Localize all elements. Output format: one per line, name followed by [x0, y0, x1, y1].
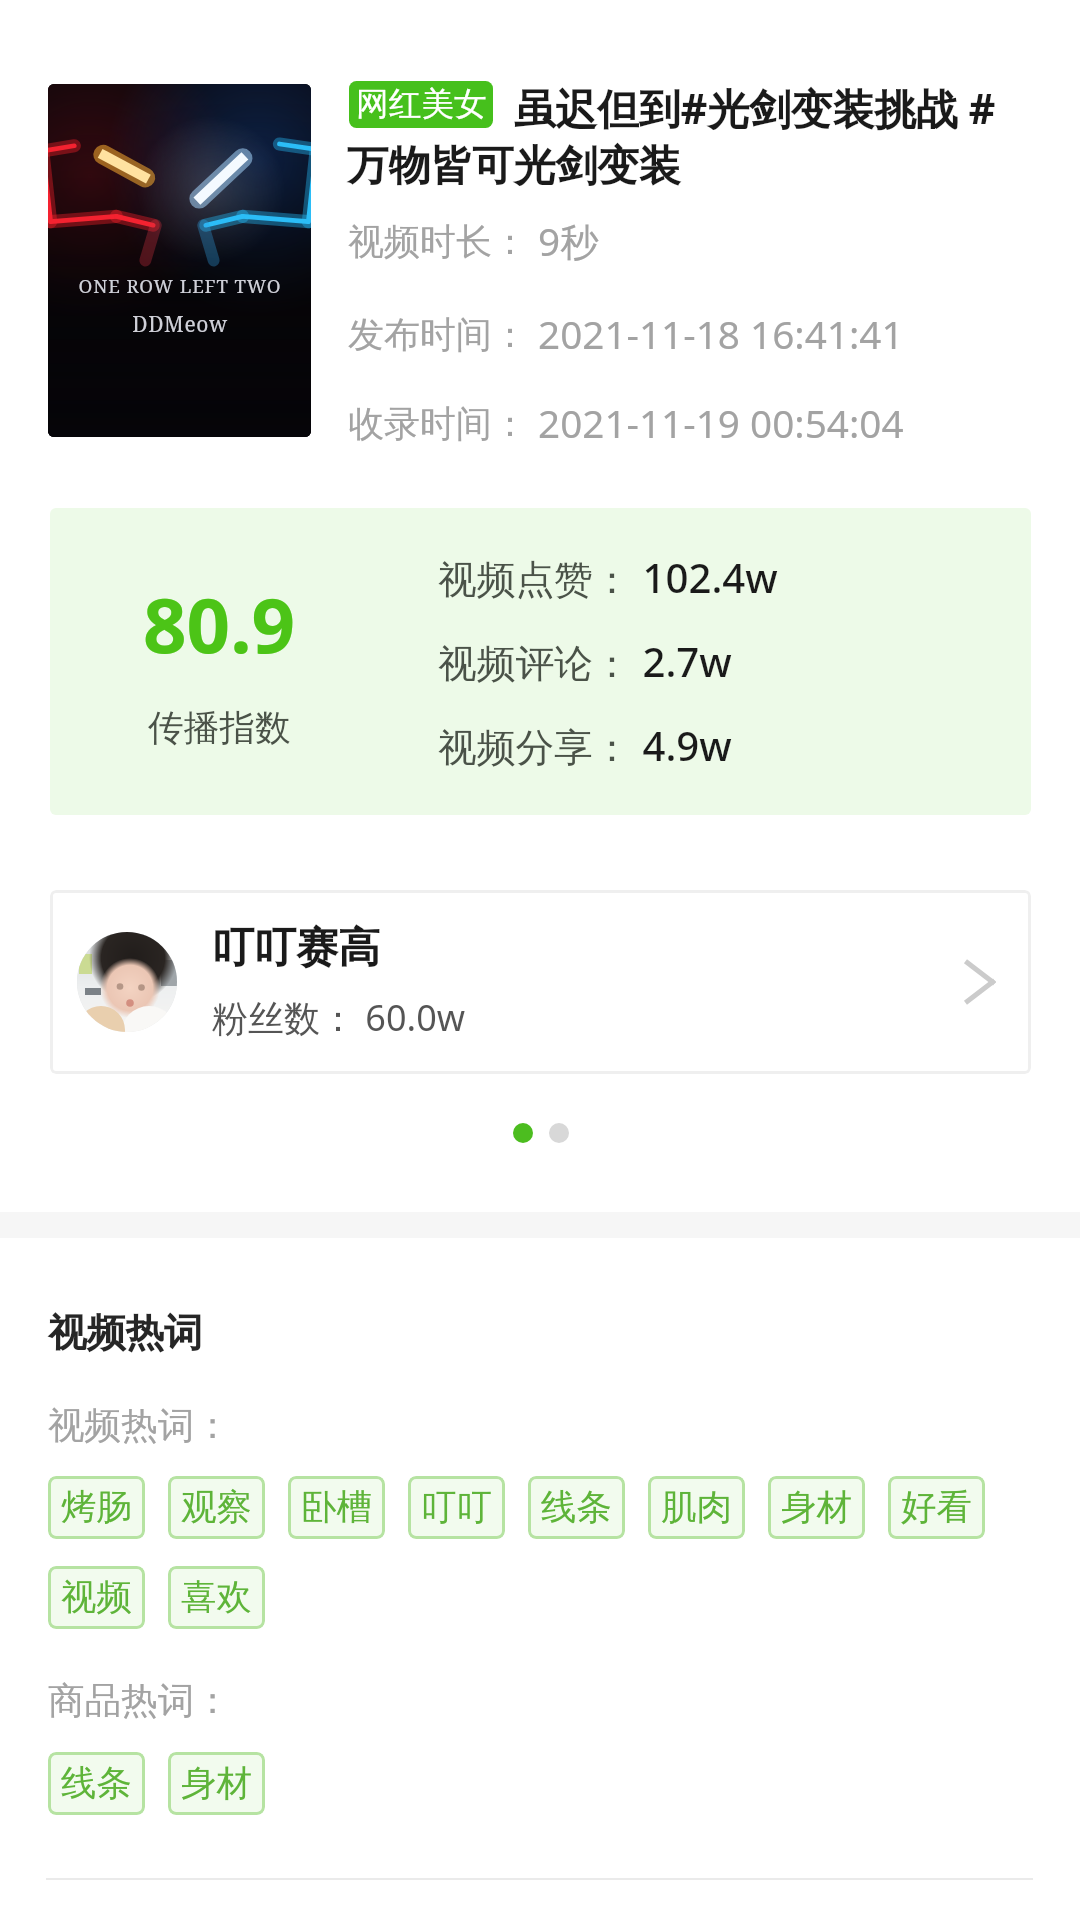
button[interactable]: 卧槽: [288, 1476, 385, 1539]
staticText: 烤肠: [61, 1485, 132, 1530]
staticText: 2.7w: [632, 634, 732, 689]
button[interactable]: 烤肠: [48, 1476, 145, 1539]
staticText: 4.9w: [632, 718, 732, 773]
staticText: 卧槽: [301, 1485, 372, 1530]
staticText: 商品热词：: [48, 1678, 231, 1724]
staticText: 肌肉: [661, 1485, 732, 1530]
staticText: 视频评论：: [438, 640, 632, 689]
button[interactable]: 线条: [48, 1752, 145, 1815]
staticText: 叮叮赛高: [212, 922, 380, 975]
button[interactable]: 观察: [168, 1476, 265, 1539]
button[interactable]: 好看: [888, 1476, 985, 1539]
button[interactable]: 视频: [48, 1566, 145, 1629]
button[interactable]: 第 1 页: [513, 1123, 533, 1143]
staticText: 叮叮: [421, 1485, 492, 1530]
button[interactable]: 叮叮赛高: [50, 890, 1031, 1074]
staticText: 观察: [181, 1485, 252, 1530]
button[interactable]: 网红美女: [349, 81, 493, 128]
staticText: 粉丝数： 60.0w: [212, 993, 466, 1042]
staticText: 传播指数: [148, 706, 291, 751]
staticText: 80.9: [143, 572, 296, 676]
staticText: 线条: [541, 1485, 612, 1530]
staticText: 线条: [61, 1761, 132, 1806]
staticText: 好看: [901, 1485, 972, 1530]
staticText: 9秒: [538, 215, 599, 268]
staticText: 2021-11-19 00:54:04: [538, 397, 904, 450]
staticText: 视频点赞：: [438, 556, 632, 605]
staticText: 2021-11-18 16:41:41: [538, 308, 904, 361]
staticText: 视频: [61, 1575, 132, 1620]
staticText: ONE ROW LEFT TWO: [78, 273, 282, 298]
button[interactable]: 视频封面: [48, 84, 311, 437]
button[interactable]: 身材: [168, 1752, 265, 1815]
button[interactable]: 喜欢: [168, 1566, 265, 1629]
button[interactable]: 查看作者详情: [947, 949, 1013, 1015]
button[interactable]: 80.9: [50, 508, 1031, 815]
staticText: 喜欢: [181, 1575, 252, 1620]
button[interactable]: 第 2 页: [549, 1123, 569, 1143]
staticText: 视频热词: [48, 1309, 203, 1358]
staticText: 视频时长：: [348, 219, 528, 264]
button[interactable]: 肌肉: [648, 1476, 745, 1539]
button[interactable]: 叮叮: [408, 1476, 505, 1539]
staticText: 身材: [781, 1485, 852, 1530]
button[interactable]: 线条: [528, 1476, 625, 1539]
staticText: 收录时间：: [348, 401, 528, 446]
staticText: 视频热词：: [48, 1403, 231, 1449]
staticText: 虽迟但到#光剑变装挑战 #万物皆可光剑变装: [347, 79, 1034, 192]
staticText: 视频分享：: [438, 724, 632, 773]
staticText: 网红美女: [356, 84, 487, 125]
staticText: DDMeow: [132, 310, 228, 339]
staticText: 发布时间：: [348, 312, 528, 357]
staticText: 102.4w: [632, 550, 778, 605]
button[interactable]: 身材: [768, 1476, 865, 1539]
staticText: 身材: [181, 1761, 252, 1806]
